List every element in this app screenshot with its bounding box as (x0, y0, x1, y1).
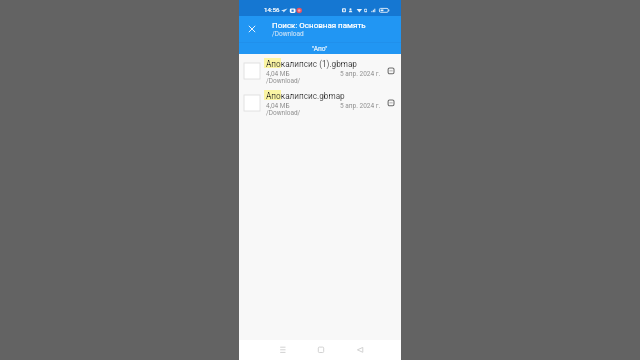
staticText: /Download/ (266, 109, 301, 117)
staticText: Поиск: Основная память (272, 21, 366, 30)
staticText: /Download (272, 30, 304, 38)
button[interactable]: Recent apps (275, 340, 291, 360)
staticText: 5 апр. 2024 г. (340, 102, 381, 110)
button[interactable]: Select Апокалипсис (1).gbmap (239, 53, 401, 85)
button[interactable]: "Апо" (239, 42, 401, 54)
button[interactable]: Select Апокалипсис.gbmap (239, 85, 401, 117)
staticText: 4,04 МБ (266, 70, 290, 78)
button[interactable]: More options (387, 98, 397, 108)
staticText: 4,04 МБ (266, 102, 290, 110)
button[interactable]: Home (313, 340, 329, 360)
staticText: 14:56 (264, 6, 280, 13)
button[interactable]: More options (387, 66, 397, 76)
button[interactable]: Close search (244, 21, 260, 37)
staticText: Апокалипсис (1).gbmap (266, 59, 357, 69)
button[interactable]: Select Апокалипсис (1).gbmap (244, 63, 260, 79)
staticText: "Апо" (312, 45, 328, 53)
staticText: /Download/ (266, 77, 301, 85)
button[interactable]: Select Апокалипсис.gbmap (244, 95, 260, 111)
button[interactable]: Back (352, 340, 368, 360)
staticText: Апокалипсис.gbmap (266, 91, 345, 101)
staticText: 5 апр. 2024 г. (340, 70, 381, 78)
